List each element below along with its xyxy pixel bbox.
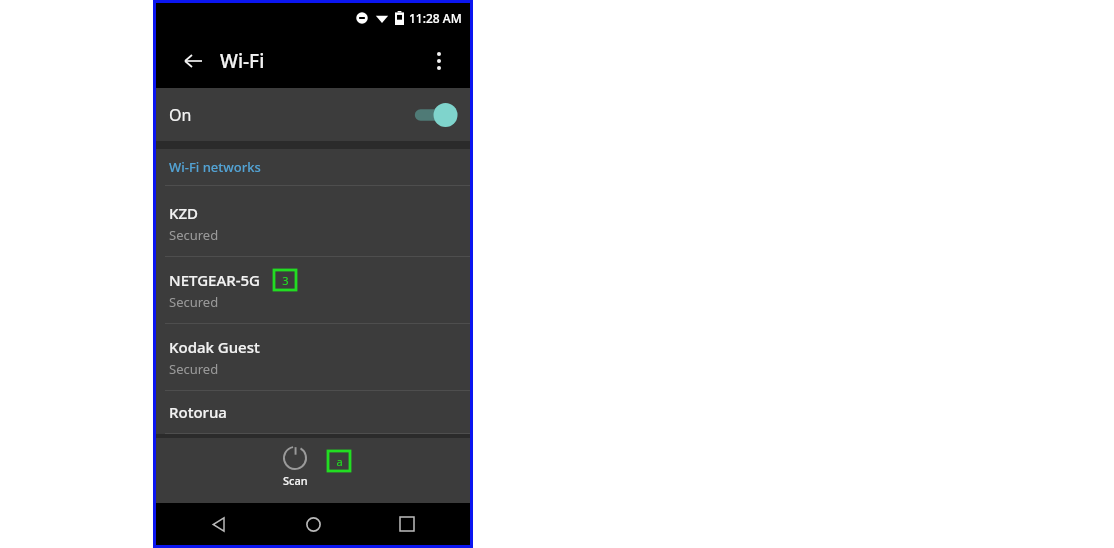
staticText: Secured bbox=[169, 226, 219, 244]
button[interactable]: KZD bbox=[156, 190, 470, 257]
staticText: Kodak Guest bbox=[169, 337, 260, 357]
button[interactable]: NETGEAR-5G bbox=[156, 257, 470, 324]
staticText: KZD bbox=[169, 203, 199, 223]
staticText: 3 bbox=[282, 273, 289, 288]
staticText: Secured bbox=[169, 360, 219, 378]
button[interactable]: Recent apps bbox=[390, 507, 424, 541]
button[interactable]: Home bbox=[296, 507, 330, 541]
staticText: 11:28 AM bbox=[409, 10, 462, 26]
button[interactable]: Back bbox=[178, 46, 208, 76]
staticText: On bbox=[169, 104, 192, 126]
staticText: Rotorua bbox=[169, 402, 227, 422]
button[interactable]: Back bbox=[202, 507, 236, 541]
button[interactable]: Kodak Guest bbox=[156, 324, 470, 391]
button[interactable]: Scan bbox=[276, 443, 314, 490]
button[interactable]: Wi-Fi toggle bbox=[410, 100, 458, 130]
staticText: Secured bbox=[169, 293, 219, 311]
button[interactable]: On bbox=[156, 88, 470, 141]
staticText: a bbox=[336, 454, 343, 469]
button[interactable]: Rotorua bbox=[156, 391, 470, 434]
staticText: Wi-Fi bbox=[220, 48, 265, 74]
button[interactable]: More options bbox=[422, 44, 456, 78]
staticText: Wi-Fi networks bbox=[169, 158, 261, 176]
staticText: NETGEAR-5G bbox=[169, 270, 260, 290]
staticText: Scan bbox=[283, 473, 308, 488]
